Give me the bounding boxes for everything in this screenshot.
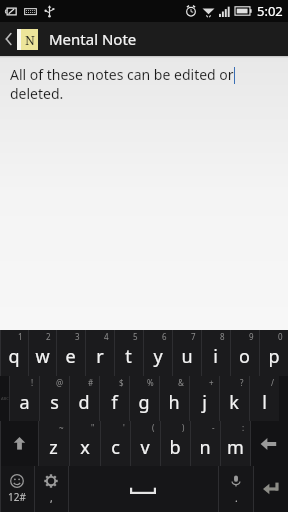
staticText: ' [123,422,125,433]
staticText: 3 [75,331,80,342]
staticText: 1 [18,331,23,342]
staticText: b [169,435,181,460]
staticText: 4 [104,331,109,342]
staticText: l [262,390,267,415]
staticText: 12# [8,490,26,504]
staticText: d [78,390,90,415]
button[interactable]: ? [219,376,249,421]
staticText: 6 [162,331,167,342]
staticText: % [147,377,154,388]
staticText: ( [152,422,155,433]
staticText: f [111,390,118,415]
button[interactable]: Up, Mental Note [0,22,288,56]
staticText: x [80,435,90,460]
button[interactable]: Shift [0,421,38,466]
staticText: i [213,344,218,369]
staticText: a [19,390,30,415]
staticText: All of these notes can be edited or dele… [10,65,234,103]
staticText: w [35,344,50,369]
staticText: ! [31,377,34,388]
button[interactable]: ~ [38,421,69,466]
staticText: k [229,390,239,415]
staticText: @ [56,377,64,388]
button[interactable]: Enter [253,466,288,512]
staticText: / [271,377,274,388]
staticText: ~ [59,422,64,433]
button[interactable]: 2 [28,330,56,376]
button[interactable]: 5 [114,330,143,376]
button[interactable]: 3 [56,330,85,376]
button[interactable]: : [220,421,250,466]
staticText: h [168,390,180,415]
button[interactable]: % [129,376,159,421]
button[interactable]: # [69,376,99,421]
staticText: ) [182,422,185,433]
staticText: $ [119,377,124,388]
staticText: 8 [220,331,225,342]
button[interactable]: ) [160,421,190,466]
button[interactable]: 0 [259,330,288,376]
staticText: 0 [278,331,283,342]
button[interactable]: Settings, comma [34,466,68,512]
staticText: & [178,377,184,388]
staticText: c [111,435,120,460]
staticText: 7 [191,331,196,342]
staticText: j [202,390,207,415]
staticText: m [227,435,244,460]
staticText: g [138,390,150,415]
staticText: 2 [46,331,51,342]
staticText: ABC [1,396,9,401]
button[interactable]: @ [39,376,69,421]
button[interactable]: Emoji and symbols [0,466,34,512]
staticText: , [50,491,53,505]
staticText: n [199,435,211,460]
staticText: p [268,344,280,369]
staticText: s [50,390,59,415]
button[interactable]: 4 [85,330,114,376]
staticText: q [8,344,20,369]
staticText: o [239,344,250,369]
button[interactable]: " [69,421,100,466]
staticText: z [49,435,58,460]
staticText: + [209,377,214,388]
button[interactable]: & [159,376,189,421]
staticText: u [181,344,193,369]
staticText: 5:02 [257,2,283,20]
button[interactable]: Voice input, period [218,466,253,512]
button[interactable]: ABC [0,376,9,421]
button[interactable]: Backspace [250,421,288,466]
button[interactable]: ! [9,376,39,421]
button[interactable]: / [249,376,279,421]
staticText: N [25,31,35,49]
staticText: y [153,344,163,369]
button[interactable]: $ [99,376,129,421]
button[interactable]: 1 [0,330,28,376]
staticText: v [140,435,150,460]
button[interactable]: 6 [143,330,172,376]
staticText: . [235,491,238,505]
button[interactable]: ' [100,421,130,466]
staticText: r [96,344,104,369]
staticText: 5 [133,331,138,342]
staticText: - [212,422,215,433]
staticText: 9 [249,331,254,342]
button[interactable]: Space [68,466,218,512]
staticText: " [91,422,95,433]
button[interactable]: 8 [201,330,230,376]
staticText: e [65,344,76,369]
staticText: # [88,377,94,388]
staticText: ? [240,377,244,388]
button[interactable]: ( [130,421,160,466]
staticText: : [242,422,245,433]
staticText: t [125,344,132,369]
button[interactable]: + [189,376,219,421]
button[interactable]: All of these notes can be edited or dele… [0,56,288,330]
button[interactable]: 9 [230,330,259,376]
staticText: Mental Note [49,29,137,49]
button[interactable]: - [190,421,220,466]
button[interactable]: 7 [172,330,201,376]
